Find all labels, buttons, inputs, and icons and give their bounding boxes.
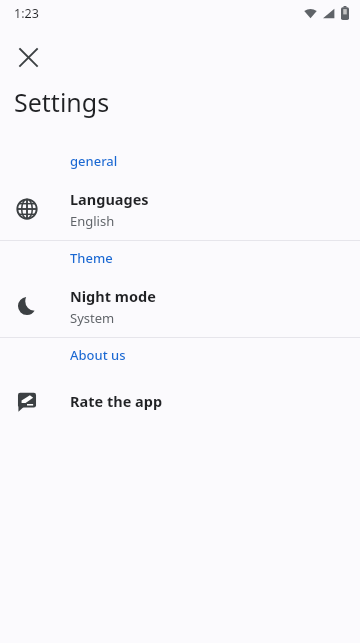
staticText: Theme <box>70 249 113 267</box>
other: Rate the app <box>16 390 38 412</box>
other: Languages <box>16 198 38 220</box>
staticText: English <box>70 212 115 230</box>
staticText: Night mode <box>70 286 156 306</box>
button[interactable]: Close <box>4 33 52 81</box>
other: Night mode <box>16 295 38 317</box>
staticText: general <box>70 152 118 170</box>
button[interactable]: Night mode <box>0 275 360 337</box>
staticText: 1:23 <box>14 5 39 22</box>
staticText: Settings <box>14 85 110 119</box>
staticText: About us <box>70 346 126 364</box>
staticText: Rate the app <box>70 391 163 411</box>
button[interactable]: Rate the app <box>0 372 360 430</box>
staticText: System <box>70 309 115 327</box>
button[interactable]: Languages <box>0 178 360 240</box>
staticText: Languages <box>70 189 149 209</box>
